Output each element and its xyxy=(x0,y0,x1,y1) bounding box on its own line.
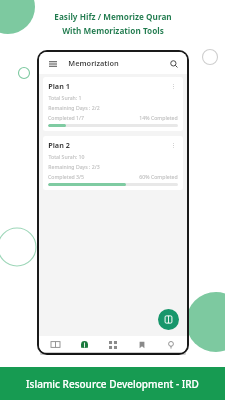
button[interactable]: Menu xyxy=(46,57,59,70)
button[interactable]: Plan 1 xyxy=(43,77,183,131)
staticText: Total Surah: 1 xyxy=(48,94,82,101)
button[interactable]: Apps xyxy=(100,336,126,353)
staticText: With Memorization Tools xyxy=(62,25,164,36)
staticText: Memorization xyxy=(68,58,119,68)
button[interactable]: Locate xyxy=(158,336,184,353)
button[interactable]: Read xyxy=(42,336,68,353)
staticText: Islamic Resource Development - IRD xyxy=(26,377,199,391)
button[interactable]: More options xyxy=(168,140,178,150)
staticText: 60% Completed xyxy=(139,173,178,180)
staticText: Completed 3/5 xyxy=(48,173,84,180)
staticText: Plan 2 xyxy=(48,140,70,150)
button[interactable]: Memorize xyxy=(71,336,97,353)
staticText: Completed 1/7 xyxy=(48,114,84,121)
button[interactable]: Plan 2 xyxy=(43,136,183,190)
button[interactable]: Search xyxy=(167,57,180,70)
button[interactable]: Add memorization plan xyxy=(158,309,179,330)
button[interactable]: Bookmarks xyxy=(129,336,155,353)
staticText: 14% Completed xyxy=(139,114,178,121)
staticText: Easily Hifz / Memorize Quran xyxy=(54,11,172,22)
button[interactable]: More options xyxy=(168,81,178,91)
staticText: Total Surah: 10 xyxy=(48,153,85,160)
staticText: Plan 1 xyxy=(48,81,70,91)
staticText: Remaining Days : 2/2 xyxy=(48,104,100,111)
staticText: Remaining Days : 2/3 xyxy=(48,163,100,170)
